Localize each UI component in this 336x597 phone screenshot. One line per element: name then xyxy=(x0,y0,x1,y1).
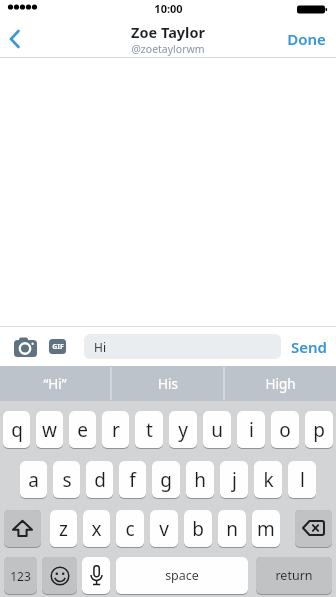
staticText: z xyxy=(59,516,68,542)
button[interactable]: space xyxy=(116,557,248,594)
staticText: w xyxy=(42,417,57,443)
staticText: j xyxy=(232,467,237,493)
button[interactable]: q xyxy=(3,411,30,448)
button[interactable]: y xyxy=(169,411,197,448)
button[interactable]: Hi xyxy=(84,334,281,359)
staticText: His xyxy=(158,375,178,393)
staticText: b xyxy=(192,516,204,542)
button[interactable]: x xyxy=(83,510,110,547)
button[interactable]: w xyxy=(36,411,63,448)
button[interactable]: His xyxy=(112,366,223,401)
staticText: t xyxy=(146,417,153,443)
button[interactable]: u xyxy=(203,411,231,448)
staticText: Done xyxy=(287,29,326,49)
staticText: GIF xyxy=(52,342,64,352)
button[interactable]: k xyxy=(254,461,282,498)
button[interactable]: d xyxy=(86,461,113,498)
button[interactable]: t xyxy=(135,411,163,448)
button[interactable]: “Hi” xyxy=(0,366,110,401)
staticText: c xyxy=(125,516,135,542)
button[interactable]: Done xyxy=(287,29,326,49)
button[interactable]: j xyxy=(220,461,248,498)
staticText: @zoetaylorwm xyxy=(131,42,205,56)
button[interactable]: r xyxy=(102,411,129,448)
staticText: High xyxy=(265,375,296,393)
button[interactable]: s xyxy=(53,461,80,498)
button[interactable] xyxy=(295,510,332,547)
button[interactable]: m xyxy=(252,510,280,547)
button[interactable]: High xyxy=(225,366,336,401)
button[interactable]: h xyxy=(186,461,214,498)
staticText: Zoe Taylor xyxy=(131,22,205,42)
staticText: r xyxy=(112,417,120,443)
button[interactable]: c xyxy=(116,510,144,547)
button[interactable]: GIF xyxy=(49,339,66,354)
button[interactable]: z xyxy=(50,510,77,547)
button[interactable]: a xyxy=(20,461,47,498)
staticText: g xyxy=(160,467,172,493)
button[interactable]: n xyxy=(218,510,246,547)
staticText: i xyxy=(249,417,254,443)
staticText: x xyxy=(91,516,102,542)
button[interactable] xyxy=(0,20,30,57)
button[interactable]: f xyxy=(119,461,146,498)
button[interactable]: l xyxy=(288,461,316,498)
staticText: a xyxy=(28,467,39,493)
button[interactable]: i xyxy=(237,411,265,448)
button[interactable]: Send xyxy=(291,337,327,357)
staticText: Send xyxy=(291,337,327,357)
button[interactable]: g xyxy=(152,461,180,498)
button[interactable]: e xyxy=(69,411,96,448)
staticText: h xyxy=(194,467,206,493)
staticText: p xyxy=(313,417,325,443)
staticText: m xyxy=(257,516,275,542)
button[interactable] xyxy=(4,510,41,547)
button[interactable] xyxy=(13,335,38,359)
staticText: space xyxy=(165,567,199,584)
staticText: “Hi” xyxy=(43,375,67,393)
button[interactable]: o xyxy=(271,411,299,448)
staticText: o xyxy=(279,417,291,443)
staticText: 123 xyxy=(10,568,31,584)
staticText: k xyxy=(263,467,274,493)
button[interactable]: 123 xyxy=(4,557,37,594)
button[interactable]: b xyxy=(184,510,212,547)
staticText: v xyxy=(159,516,169,542)
button[interactable]: return xyxy=(256,557,332,594)
button[interactable] xyxy=(42,557,77,594)
staticText: d xyxy=(94,467,106,493)
staticText: e xyxy=(77,417,88,443)
staticText: q xyxy=(11,417,23,443)
staticText: 10:00 xyxy=(154,1,183,16)
staticText: return xyxy=(275,567,313,584)
button[interactable] xyxy=(82,557,110,594)
staticText: s xyxy=(62,467,72,493)
staticText: l xyxy=(300,467,305,493)
staticText: f xyxy=(129,467,136,493)
staticText: Hi xyxy=(94,339,106,355)
button[interactable]: p xyxy=(305,411,333,448)
staticText: n xyxy=(226,516,238,542)
button[interactable]: v xyxy=(150,510,178,547)
staticText: y xyxy=(178,417,188,443)
staticText: u xyxy=(211,417,223,443)
